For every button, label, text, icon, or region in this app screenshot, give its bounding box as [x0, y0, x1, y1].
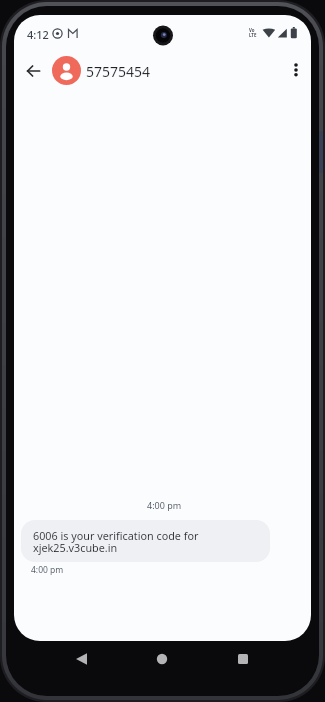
staticText: Vo LTE — [249, 27, 257, 38]
button[interactable] — [284, 58, 308, 82]
button[interactable] — [228, 644, 258, 674]
staticText: 4:12 — [27, 27, 49, 42]
button[interactable]: 57575454 — [86, 62, 151, 81]
button[interactable] — [22, 59, 46, 83]
button[interactable] — [52, 56, 81, 85]
button[interactable] — [147, 644, 177, 674]
button[interactable] — [66, 644, 97, 674]
staticText: 6006 is your verification code for xjek2… — [33, 528, 199, 555]
staticText: 4:00 pm — [31, 564, 64, 576]
button[interactable]: 6006 is your verification code for xjek2… — [21, 520, 270, 562]
staticText: 4:00 pm — [147, 499, 182, 511]
